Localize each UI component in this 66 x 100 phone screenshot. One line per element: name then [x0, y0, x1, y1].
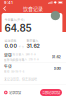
- button[interactable]: 午餐: [0, 63, 66, 74]
- staticText: 剩余摄入: [27, 39, 39, 43]
- staticText: 饮食记录: [23, 5, 43, 12]
- staticText: 64.85: [5, 22, 32, 34]
- staticText: 运动消耗: [5, 39, 17, 43]
- staticText: 今日还可以摄入 1735 千卡: [6, 57, 39, 61]
- staticText: 千卡: [18, 45, 24, 49]
- button[interactable]: 记录饮食: [4, 88, 21, 97]
- button[interactable]: Meal photo: [51, 11, 60, 20]
- staticText: 立即记录饮食: [42, 90, 60, 95]
- staticText: 9:41: [4, 0, 13, 5]
- staticText: 推荐 450-550 千卡: [4, 58, 25, 62]
- staticText: 建议每日摄入 1800 千卡: [6, 52, 36, 56]
- staticText: 0.00: [5, 43, 18, 49]
- button[interactable]: 早餐: [0, 51, 66, 62]
- staticText: 未记录饮食，快去添加吧: [4, 77, 37, 81]
- staticText: 记录饮食: [9, 90, 21, 95]
- staticText: 0.00: [53, 66, 60, 71]
- staticText: 推荐 550-700 千卡: [4, 69, 25, 73]
- button[interactable]: 立即记录饮食: [40, 89, 62, 96]
- staticText: 31.62: [51, 55, 60, 59]
- staticText: 31.62: [27, 43, 40, 49]
- staticText: 午餐: [4, 63, 12, 69]
- staticText: 早餐: [4, 52, 12, 57]
- button[interactable]: Back: [1, 5, 8, 12]
- staticText: 今日摄入(千卡): [5, 18, 25, 22]
